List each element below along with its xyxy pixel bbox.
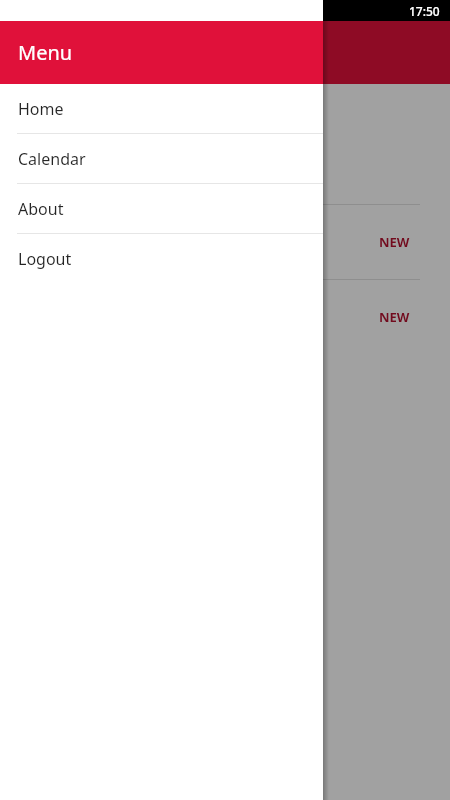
staticText: Logout — [18, 248, 72, 270]
staticText: May 9, 2019 — [183, 165, 268, 185]
staticText: Calendar — [18, 148, 86, 170]
staticText: About — [18, 198, 64, 220]
button[interactable]: Home — [0, 84, 323, 133]
button[interactable]: Menu — [0, 21, 323, 84]
staticText: Menu — [18, 39, 73, 66]
staticText: 17:50 — [409, 3, 440, 19]
button[interactable]: Calendar — [0, 134, 323, 183]
button[interactable]: Logout — [0, 234, 323, 283]
button[interactable]: About — [0, 184, 323, 233]
staticText: NEW — [379, 308, 410, 326]
staticText: Home — [18, 98, 64, 120]
staticText: NEW — [379, 233, 410, 251]
